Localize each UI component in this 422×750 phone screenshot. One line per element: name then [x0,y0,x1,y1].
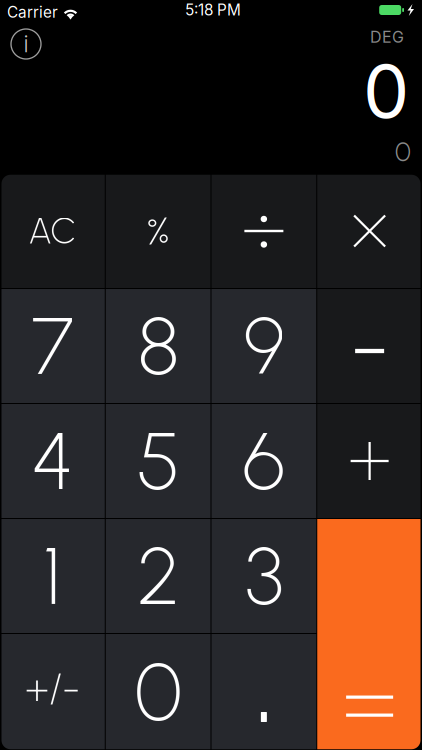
button[interactable]: 7 [0,289,105,403]
button[interactable]: 0 [106,634,211,750]
staticText: DEG [370,27,404,47]
staticText: 0 [363,47,409,135]
staticText: 1 [43,528,62,624]
button[interactable]: 8 [106,289,211,403]
button[interactable]: % [106,174,211,288]
button[interactable]: 5 [106,404,211,518]
staticText: 2 [137,528,179,624]
button[interactable]: Multiply [317,174,422,288]
button[interactable]: 6 [211,404,316,518]
button[interactable]: Info [4,22,48,66]
button[interactable]: 2 [106,519,211,633]
staticText: 7 [31,298,73,394]
staticText: 5 [137,413,180,509]
button[interactable]: Plus [317,404,422,518]
button[interactable]: 1 [0,519,105,633]
button[interactable]: Divide [211,174,316,288]
staticText: 5:18 PM [185,1,241,19]
staticText: +/- [25,663,80,713]
staticText: Carrier [7,3,58,22]
button[interactable]: +/- [0,634,105,750]
button[interactable]: 3 [211,519,316,633]
staticText: 0 [135,644,182,740]
button[interactable]: 4 [0,404,105,518]
button[interactable]: Decimal point [211,634,316,750]
button[interactable]: Equals [317,519,422,750]
staticText: 8 [138,298,179,394]
staticText: 0 [395,136,411,168]
staticText: % [147,208,170,254]
button[interactable]: AC [0,174,105,288]
button[interactable]: DEG [344,26,404,48]
staticText: 9 [243,298,284,394]
staticText: i [23,30,28,58]
staticText: 6 [242,413,285,509]
staticText: AC [28,209,76,253]
staticText: 3 [245,528,283,624]
staticText: 4 [31,413,73,509]
button[interactable]: 9 [211,289,316,403]
button[interactable]: Minus [317,289,422,403]
